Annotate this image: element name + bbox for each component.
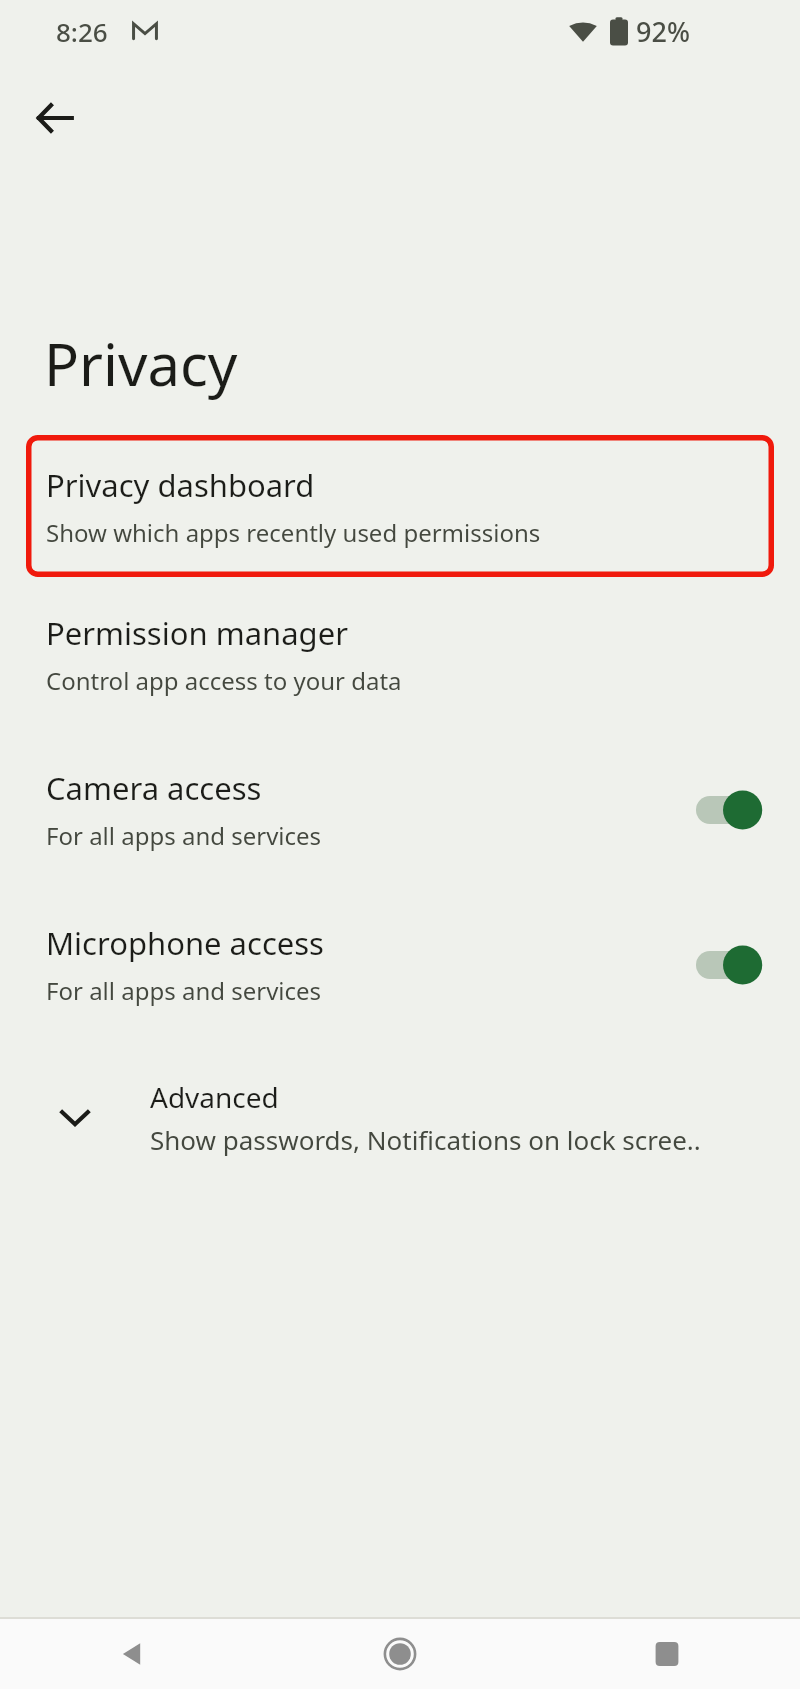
button[interactable]: Microphone access [0, 887, 800, 1042]
staticText: 92% [636, 13, 690, 50]
button[interactable]: Permission manager [0, 577, 800, 732]
button[interactable]: Back [0, 1619, 266, 1689]
button[interactable]: Home [266, 1619, 533, 1689]
button[interactable]: Camera access toggle [696, 782, 766, 838]
button[interactable]: Recents [533, 1619, 800, 1689]
staticText: Show passwords, Notifications on lock sc… [150, 1122, 701, 1157]
staticText: Microphone access [46, 922, 324, 964]
button[interactable]: Advanced [0, 1042, 800, 1192]
staticText: Privacy dashboard [46, 464, 315, 506]
staticText: Control app access to your data [46, 664, 402, 697]
staticText: Permission manager [46, 612, 348, 654]
staticText: Show which apps recently used permission… [46, 516, 541, 549]
button[interactable]: Back [18, 81, 92, 155]
staticText: 8:26 [56, 14, 108, 49]
button[interactable]: Microphone access toggle [696, 937, 766, 993]
staticText: For all apps and services [46, 974, 322, 1007]
staticText: For all apps and services [46, 819, 322, 852]
button[interactable]: Camera access [0, 732, 800, 887]
staticText: Camera access [46, 767, 262, 809]
staticText: Privacy [44, 324, 238, 403]
button[interactable]: Privacy dashboard [26, 435, 774, 577]
staticText: Advanced [150, 1078, 279, 1116]
